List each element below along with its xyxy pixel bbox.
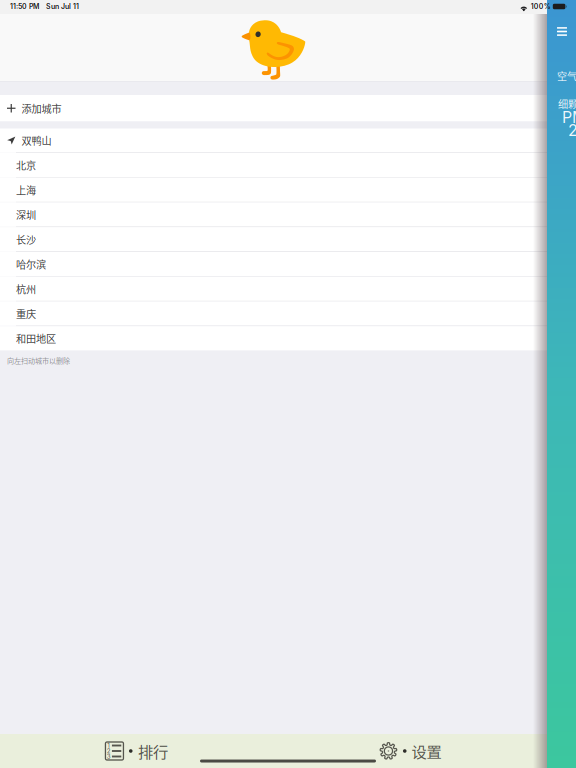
button[interactable]: 和田地区 [0,326,547,350]
staticText: 上海 [16,182,36,197]
button[interactable]: 1 [0,734,273,768]
staticText: 3 [107,753,111,760]
staticText: 排行 [138,740,168,762]
staticText: 哈尔滨 [16,257,46,271]
button[interactable]: 哈尔滨 [0,252,547,276]
staticText: 深圳 [16,207,36,222]
staticText: 11:50 PM [10,2,39,11]
staticText: 重庆 [16,306,36,321]
staticText: 细颗粒物 [558,96,576,111]
staticText: 和田地区 [16,331,56,346]
staticText: 杭州 [16,281,36,296]
staticText: Sun Jul 11 [46,2,79,11]
staticText: 🐤 [237,14,310,81]
button[interactable]: 设置 [273,734,547,768]
button[interactable]: 深圳 [0,202,547,227]
staticText: 100% [531,2,551,11]
button[interactable]: 上海 [0,178,547,202]
button[interactable]: Menu [547,22,576,41]
staticText: 双鸭山 [21,133,51,148]
staticText: PM [562,107,576,127]
staticText: 向左扫动城市以删除 [7,355,70,366]
staticText: 空气质量 [557,68,576,83]
button[interactable]: 长沙 [0,227,547,251]
button[interactable]: 杭州 [0,277,547,301]
button[interactable]: 添加城市 [0,95,547,121]
button[interactable]: 重庆 [0,301,547,326]
staticText: 北京 [16,158,36,172]
staticText: 设置 [411,740,441,762]
staticText: 长沙 [16,232,36,247]
staticText: 添加城市 [21,101,61,116]
button[interactable]: 双鸭山 [0,128,547,152]
staticText: 2 [107,747,111,755]
staticText: 2.5 [568,120,576,140]
staticText: 1 [107,742,110,749]
button[interactable]: 北京 [0,153,547,177]
